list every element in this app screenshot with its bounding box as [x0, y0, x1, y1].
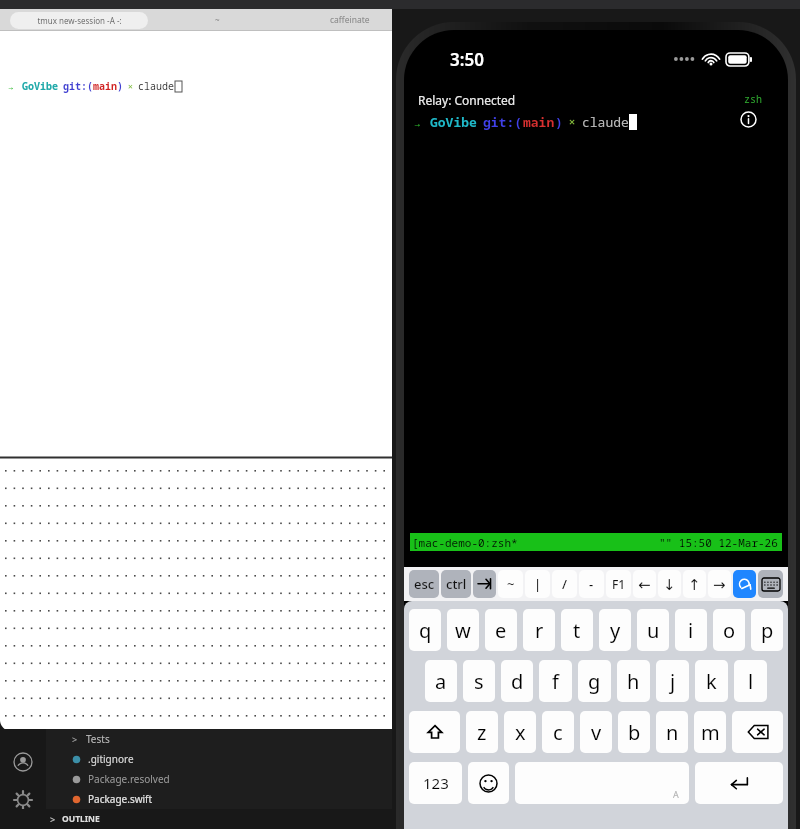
staticText: ✕ — [128, 82, 133, 91]
staticText: a — [435, 668, 447, 695]
button[interactable]: m — [694, 711, 726, 753]
staticText: y — [610, 617, 621, 644]
staticText: l — [748, 668, 754, 695]
staticText: u — [647, 617, 660, 644]
button[interactable]: > — [0, 809, 392, 829]
staticText: → — [414, 115, 421, 130]
staticText: OUTLINE — [62, 813, 100, 825]
button[interactable]: F1 — [606, 570, 631, 598]
staticText: d — [511, 668, 524, 695]
button[interactable]: Backspace — [732, 711, 783, 753]
staticText: / — [562, 575, 568, 593]
button[interactable]: Package.resolved — [46, 769, 392, 789]
button[interactable]: Hide keyboard — [758, 570, 783, 598]
staticText: ctrl — [446, 575, 467, 593]
button[interactable]: esc — [409, 570, 439, 598]
button[interactable]: Account — [10, 749, 36, 775]
staticText: q — [419, 617, 432, 644]
button[interactable]: Return — [695, 762, 783, 804]
staticText: zsh — [744, 92, 762, 106]
staticText: s — [474, 668, 484, 695]
staticText: Package.resolved — [88, 772, 170, 786]
button[interactable]: ← — [633, 570, 656, 598]
button[interactable]: Space — [515, 762, 689, 804]
staticText: t — [573, 617, 581, 644]
button[interactable]: Emoji — [468, 762, 509, 804]
staticText: o — [723, 617, 736, 644]
staticText: main — [523, 113, 555, 131]
staticText: h — [627, 668, 640, 695]
button[interactable]: Settings — [10, 791, 36, 809]
staticText: | — [534, 575, 542, 593]
button[interactable]: y — [599, 609, 631, 651]
button[interactable]: ctrl — [441, 570, 471, 598]
button[interactable]: r — [523, 609, 555, 651]
staticText: A — [673, 788, 679, 800]
button[interactable]: g — [578, 660, 611, 702]
button[interactable]: | — [525, 570, 550, 598]
staticText: Tests — [86, 732, 110, 746]
button[interactable]: n — [656, 711, 688, 753]
button[interactable]: w — [447, 609, 479, 651]
staticText: .gitignore — [88, 752, 134, 766]
button[interactable]: f — [539, 660, 572, 702]
staticText: k — [706, 668, 717, 695]
staticText: GoVibe — [22, 79, 58, 93]
button[interactable]: .gitignore — [46, 749, 392, 769]
button[interactable]: c — [542, 711, 574, 753]
staticText: [mac-demo-0:zsh* — [412, 535, 518, 550]
button[interactable]: a — [425, 660, 457, 702]
staticText: main — [93, 79, 117, 93]
button[interactable]: u — [637, 609, 669, 651]
button[interactable]: 123 — [409, 762, 462, 804]
button[interactable]: j — [656, 660, 689, 702]
button[interactable]: o — [713, 609, 745, 651]
staticText: GoVibe — [430, 113, 477, 131]
staticText: > — [50, 813, 56, 825]
staticText: m — [701, 719, 720, 746]
staticText: ↓ — [663, 576, 676, 593]
staticText: n — [666, 719, 679, 746]
button[interactable]: d — [501, 660, 533, 702]
staticText: i — [688, 617, 694, 644]
staticText: 123 — [423, 773, 449, 793]
staticText: "" 15:50 12-Mar-26 — [659, 535, 778, 550]
staticText: git:( — [63, 79, 93, 93]
button[interactable]: Package.swift — [46, 789, 392, 809]
staticText: 3:50 — [450, 48, 484, 71]
button[interactable]: e — [485, 609, 517, 651]
button[interactable]: x — [504, 711, 536, 753]
button[interactable]: - — [579, 570, 604, 598]
button[interactable]: t — [561, 609, 593, 651]
button[interactable]: b — [618, 711, 650, 753]
button[interactable]: / — [552, 570, 577, 598]
button[interactable]: h — [617, 660, 650, 702]
staticText: tmux new-session -A -: — [37, 15, 122, 26]
button[interactable]: p — [751, 609, 783, 651]
button[interactable]: Session info — [737, 108, 759, 130]
staticText: w — [455, 617, 471, 644]
button[interactable]: Tab — [473, 570, 496, 598]
staticText: claude — [582, 113, 629, 131]
button[interactable]: ↓ — [658, 570, 681, 598]
button[interactable]: > — [46, 729, 392, 749]
button[interactable]: v — [580, 711, 612, 753]
button[interactable]: Shift — [409, 711, 460, 753]
button[interactable]: tmux new-session -A -: — [10, 12, 148, 29]
staticText: Package.swift — [88, 792, 153, 806]
staticText: g — [588, 668, 601, 695]
button[interactable]: → — [708, 570, 731, 598]
button[interactable]: i — [675, 609, 707, 651]
button[interactable]: q — [409, 609, 441, 651]
staticText: r — [535, 617, 544, 644]
staticText: f — [552, 668, 559, 695]
button[interactable]: z — [466, 711, 498, 753]
button[interactable]: k — [695, 660, 728, 702]
button[interactable]: s — [463, 660, 495, 702]
button[interactable]: ~ — [498, 570, 523, 598]
button[interactable]: l — [734, 660, 767, 702]
staticText: F1 — [612, 576, 626, 592]
button[interactable]: Touch mode — [733, 570, 756, 598]
staticText: Relay: Connected — [418, 92, 516, 108]
button[interactable]: ↑ — [683, 570, 706, 598]
